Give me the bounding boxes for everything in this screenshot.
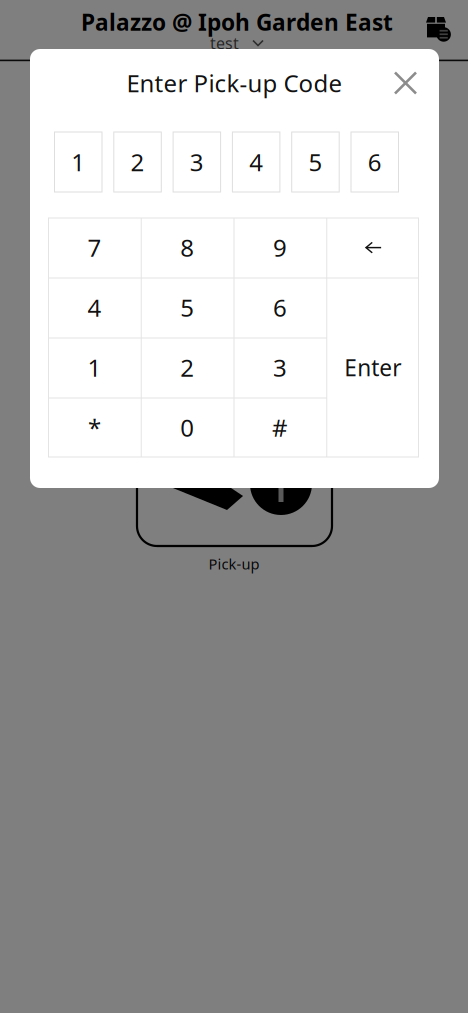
staticText: 6 bbox=[368, 146, 382, 178]
button[interactable]: 3 bbox=[233, 337, 326, 397]
button[interactable]: * bbox=[48, 397, 141, 457]
staticText: 0 bbox=[180, 412, 194, 443]
staticText: 2 bbox=[131, 146, 145, 178]
button[interactable]: 2 bbox=[141, 337, 234, 397]
staticText: Enter Pick-up Code bbox=[126, 67, 342, 99]
staticText: 2 bbox=[180, 352, 194, 383]
button[interactable]: 5 bbox=[141, 277, 234, 337]
staticText: test bbox=[210, 32, 239, 54]
staticText: Enter bbox=[344, 352, 401, 382]
staticText: * bbox=[88, 412, 101, 443]
button[interactable]: # bbox=[233, 397, 326, 457]
staticText: 3 bbox=[273, 352, 287, 383]
button[interactable]: 7 bbox=[48, 217, 141, 277]
button[interactable]: 0 bbox=[141, 397, 234, 457]
button[interactable]: 8 bbox=[141, 217, 234, 277]
staticText: 1 bbox=[71, 146, 85, 178]
staticText: # bbox=[272, 412, 288, 443]
button[interactable]: 1 bbox=[48, 337, 141, 397]
staticText: 6 bbox=[273, 292, 287, 323]
button[interactable]: Backspace bbox=[326, 217, 419, 277]
staticText: 4 bbox=[249, 146, 263, 178]
staticText: 5 bbox=[308, 146, 322, 178]
button[interactable]: 4 bbox=[48, 277, 141, 337]
staticText: 9 bbox=[273, 232, 287, 263]
button[interactable]: 9 bbox=[233, 217, 326, 277]
button[interactable]: Close bbox=[383, 61, 427, 105]
staticText: 1 bbox=[87, 352, 101, 383]
button[interactable]: Orders bbox=[418, 9, 458, 49]
staticText: Palazzo @ Ipoh Garden East bbox=[81, 7, 393, 37]
button[interactable]: 6 bbox=[233, 277, 326, 337]
staticText: 4 bbox=[87, 292, 101, 323]
staticText: 3 bbox=[190, 146, 204, 178]
staticText: Pick-up bbox=[208, 554, 259, 573]
staticText: 5 bbox=[180, 292, 194, 323]
staticText: 7 bbox=[87, 232, 101, 263]
button[interactable]: Enter bbox=[326, 277, 419, 457]
staticText: 8 bbox=[180, 232, 194, 263]
